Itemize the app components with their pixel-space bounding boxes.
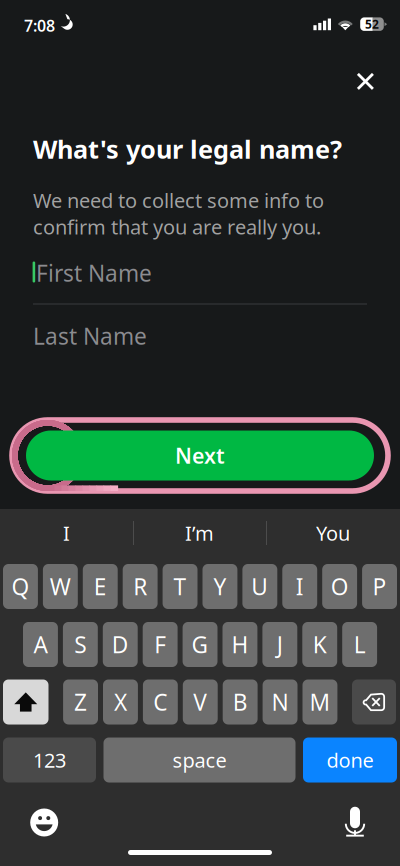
staticText: W — [50, 571, 71, 601]
button[interactable]: B — [223, 679, 258, 724]
staticText: I — [296, 571, 304, 601]
button[interactable]: N — [263, 679, 297, 724]
staticText: C — [153, 687, 167, 717]
button[interactable]: I — [282, 564, 317, 609]
button[interactable]: Delete — [352, 679, 396, 724]
button[interactable]: O — [322, 564, 357, 609]
button[interactable]: D — [103, 622, 138, 667]
button[interactable]: R — [123, 564, 158, 609]
button[interactable]: I — [0, 510, 133, 556]
button[interactable]: U — [242, 564, 277, 609]
button[interactable]: Shift — [3, 679, 48, 724]
button[interactable]: Y — [202, 564, 237, 609]
staticText: 7:08 — [24, 15, 55, 36]
staticText: O — [331, 571, 349, 601]
staticText: space — [172, 747, 226, 773]
staticText: H — [231, 629, 248, 659]
button[interactable]: Q — [3, 564, 38, 609]
staticText: I’m — [185, 520, 214, 546]
button[interactable]: Z — [63, 679, 98, 724]
button[interactable]: 123 — [3, 737, 96, 782]
button[interactable]: Emoji — [22, 800, 66, 844]
staticText: Next — [175, 441, 225, 470]
button[interactable]: You — [266, 510, 400, 556]
button[interactable]: M — [302, 679, 337, 724]
staticText: J — [277, 629, 283, 659]
staticText: U — [251, 571, 268, 601]
staticText: D — [112, 629, 129, 659]
button[interactable]: done — [303, 737, 397, 782]
staticText: Q — [11, 571, 29, 601]
button[interactable]: T — [163, 564, 197, 609]
staticText: 123 — [33, 747, 66, 773]
staticText: 52 — [365, 16, 379, 32]
staticText: Z — [74, 687, 87, 717]
button[interactable]: G — [183, 622, 217, 667]
button[interactable]: J — [262, 622, 297, 667]
staticText: Y — [213, 571, 226, 601]
staticText: S — [74, 629, 86, 659]
staticText: T — [173, 571, 186, 601]
button[interactable]: E — [83, 564, 118, 609]
staticText: F — [154, 629, 166, 659]
button[interactable]: S — [63, 622, 98, 667]
button[interactable]: H — [222, 622, 257, 667]
staticText: K — [313, 629, 327, 659]
button[interactable]: L — [342, 622, 377, 667]
staticText: A — [33, 629, 47, 659]
button[interactable]: K — [302, 622, 337, 667]
button[interactable]: C — [143, 679, 178, 724]
staticText: First Name — [36, 258, 152, 288]
button[interactable]: space — [103, 737, 295, 782]
button[interactable]: Close — [343, 59, 387, 103]
button[interactable]: A — [23, 622, 58, 667]
staticText: P — [372, 571, 386, 601]
staticText: V — [193, 687, 207, 717]
staticText: You — [316, 520, 350, 546]
staticText: M — [309, 687, 330, 717]
button[interactable]: F — [143, 622, 178, 667]
staticText: B — [233, 687, 248, 717]
staticText: Last Name — [33, 321, 147, 351]
staticText: E — [94, 571, 107, 601]
staticText: What's your legal name? — [33, 132, 342, 166]
staticText: L — [354, 629, 366, 659]
button[interactable]: X — [103, 679, 138, 724]
staticText: X — [114, 687, 127, 717]
staticText: done — [326, 747, 373, 773]
staticText: N — [272, 687, 289, 717]
staticText: I — [63, 520, 70, 546]
staticText: R — [133, 571, 147, 601]
button[interactable]: V — [183, 679, 218, 724]
button[interactable]: W — [43, 564, 78, 609]
button[interactable]: P — [362, 564, 397, 609]
button[interactable]: Next — [26, 430, 374, 480]
button[interactable]: Dictation — [333, 795, 377, 839]
button[interactable]: I’m — [133, 510, 266, 556]
staticText: We need to collect some info to confirm … — [33, 187, 324, 240]
staticText: G — [191, 629, 208, 659]
